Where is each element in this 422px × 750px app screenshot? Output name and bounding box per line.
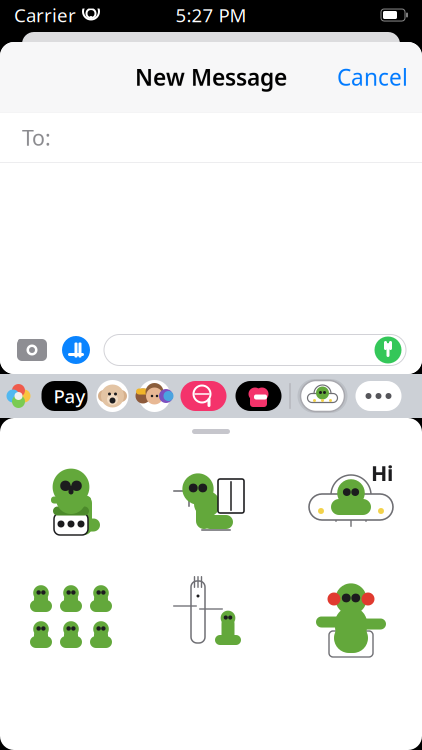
button[interactable]: Alien reading sticker [141,450,281,554]
staticText: New Message [135,62,287,92]
button[interactable]: App Store [61,331,91,369]
staticText: Hi [371,459,393,487]
button[interactable]: Alien sitting sticker [1,450,141,554]
button[interactable]: Apple Pay [40,380,88,412]
button[interactable]: Alien Stickers [297,379,347,413]
button[interactable]: Images [179,380,227,412]
button[interactable]: More apps [354,380,402,412]
button[interactable]: Send [374,336,404,364]
button[interactable]: To: [0,112,422,162]
button[interactable]: Alien with headphones sticker [281,566,421,666]
button[interactable]: Memoji [136,379,172,413]
button[interactable]: Cancel [323,52,422,102]
button[interactable]: Photos [3,381,33,411]
staticText: Pay [53,384,85,408]
button[interactable]: Waving tube alien sticker [141,566,281,666]
button[interactable]: Camera [16,330,48,370]
staticText: 5:27 PM [175,3,246,27]
staticText: Carrier [14,3,76,27]
staticText: To: [22,123,51,152]
button[interactable]: Digital Touch [234,380,282,412]
staticText: Cancel [337,62,408,92]
button[interactable]: UFO sticker [281,450,421,554]
button[interactable]: Alien crowd sticker [1,566,141,666]
button[interactable]: Memoji Stickers [95,379,129,413]
